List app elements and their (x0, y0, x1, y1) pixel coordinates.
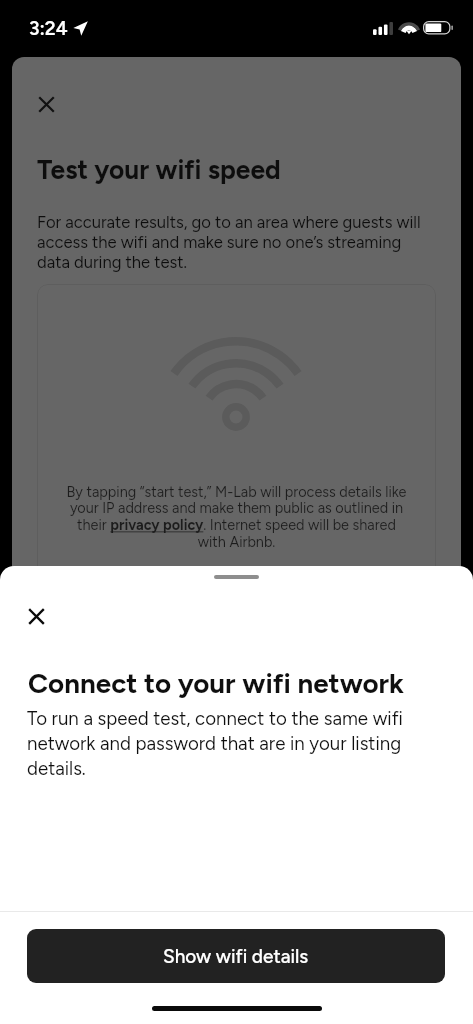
staticText: Show wifi details (163, 945, 309, 968)
button[interactable]: Close (30, 88, 63, 121)
staticText: Connect to your wifi network (28, 667, 405, 700)
button[interactable]: Show wifi details (27, 929, 445, 983)
staticText: To run a speed test, connect to the same… (27, 707, 412, 780)
staticText: 3:24 (29, 17, 68, 40)
button[interactable]: Close (20, 600, 53, 633)
staticText: Test your wifi speed (37, 154, 281, 186)
staticText: For accurate results, go to an area wher… (37, 212, 431, 272)
staticText: By tapping “start test,” M-Lab will proc… (63, 483, 410, 551)
